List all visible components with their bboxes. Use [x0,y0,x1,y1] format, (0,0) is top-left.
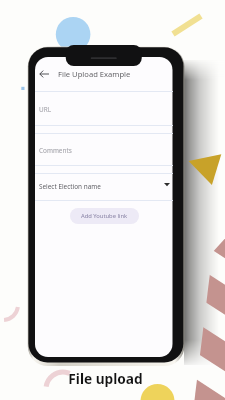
staticText: Select Election name [39,182,101,191]
button[interactable]: Back [35,66,173,82]
button[interactable]: Comments [35,134,173,165]
staticText: File Upload Example [58,69,131,79]
staticText: Comments [39,146,72,155]
button[interactable]: URL [35,92,173,125]
button[interactable]: Select Election name [35,174,173,200]
button[interactable]: Back [37,67,51,81]
staticText: URL [39,105,51,114]
button[interactable]: Add Youtube link [70,208,139,224]
staticText: File upload [68,369,143,388]
staticText: Add Youtube link [81,212,128,220]
